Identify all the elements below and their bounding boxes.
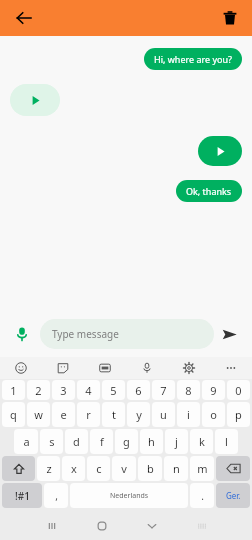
button[interactable]: h [140, 429, 163, 454]
button[interactable]: w [27, 402, 50, 427]
button[interactable]: s [40, 429, 63, 454]
staticText: s [49, 434, 55, 449]
button[interactable]: Record voice message [8, 320, 36, 348]
button[interactable]: 5 [102, 380, 125, 400]
staticText: o [210, 407, 217, 422]
staticText: l [225, 434, 228, 449]
button[interactable]: j [165, 429, 188, 454]
button[interactable]: Emoji [0, 357, 42, 379]
button[interactable]: 0 [227, 380, 250, 400]
staticText: 6 [135, 383, 142, 398]
staticText: !#1 [15, 489, 30, 503]
button[interactable]: Backspace [216, 456, 250, 481]
staticText: v [121, 461, 127, 476]
button[interactable]: r [77, 402, 100, 427]
staticText: f [100, 434, 104, 449]
button[interactable]: Type message [40, 319, 214, 349]
button[interactable]: Shift [2, 456, 35, 481]
staticText: w [34, 407, 43, 422]
staticText: n [173, 461, 180, 476]
staticText: r [86, 407, 91, 422]
staticText: , [55, 489, 58, 503]
staticText: 4 [85, 383, 92, 398]
button[interactable]: p [227, 402, 250, 427]
button[interactable]: Symbols [2, 483, 42, 508]
staticText: a [23, 434, 30, 449]
button[interactable]: More options [210, 357, 252, 379]
button[interactable]: n [164, 456, 188, 481]
staticText: p [235, 407, 242, 422]
staticText: m [197, 461, 208, 476]
button[interactable]: a [14, 429, 38, 454]
button[interactable]: l [215, 429, 238, 454]
button[interactable]: GIF [84, 357, 126, 379]
button[interactable]: i [177, 402, 200, 427]
button[interactable]: g [115, 429, 138, 454]
staticText: q [10, 407, 17, 422]
staticText: h [148, 434, 155, 449]
button[interactable]: Play voice message [10, 84, 60, 116]
staticText: 8 [185, 383, 192, 398]
button[interactable]: 2 [27, 380, 50, 400]
staticText: Hi, where are you? [154, 53, 232, 65]
button[interactable]: b [138, 456, 162, 481]
staticText: u [160, 407, 167, 422]
button[interactable]: 3 [52, 380, 75, 400]
button[interactable]: Send [214, 319, 244, 349]
button[interactable]: , [44, 483, 68, 508]
staticText: . [201, 489, 204, 503]
button[interactable]: Play voice message [198, 136, 242, 166]
button[interactable]: v [112, 456, 136, 481]
staticText: 9 [210, 383, 217, 398]
staticText: y [136, 407, 142, 422]
staticText: 0 [235, 383, 242, 398]
button[interactable]: Hi, where are you? [144, 48, 242, 70]
button[interactable]: 9 [202, 380, 225, 400]
button[interactable]: 7 [152, 380, 175, 400]
staticText: Ok, thanks [186, 185, 232, 197]
button[interactable]: o [202, 402, 225, 427]
button[interactable]: Settings [168, 357, 210, 379]
button[interactable]: Home [77, 512, 127, 540]
button[interactable]: Hide keyboard [127, 512, 177, 540]
button[interactable]: c [87, 456, 110, 481]
staticText: 7 [160, 383, 167, 398]
button[interactable]: u [152, 402, 175, 427]
button[interactable]: d [65, 429, 88, 454]
button[interactable]: y [127, 402, 150, 427]
button[interactable]: Ok, thanks [176, 180, 242, 202]
button[interactable]: Stickers [42, 357, 84, 379]
button[interactable]: Delete [220, 8, 240, 28]
button[interactable]: f [90, 429, 113, 454]
staticText: 1 [10, 383, 17, 398]
button[interactable]: q [2, 402, 25, 427]
staticText: i [187, 407, 190, 422]
staticText: b [147, 461, 154, 476]
staticText: 2 [35, 383, 42, 398]
button[interactable]: k [190, 429, 213, 454]
staticText: d [73, 434, 80, 449]
button[interactable]: 1 [2, 380, 25, 400]
button[interactable]: Back [12, 6, 36, 30]
button[interactable]: e [52, 402, 75, 427]
staticText: 5 [110, 383, 117, 398]
button[interactable]: 6 [127, 380, 150, 400]
button[interactable]: m [190, 456, 214, 481]
button[interactable]: 4 [77, 380, 100, 400]
staticText: t [112, 407, 116, 422]
button[interactable]: Recent apps [26, 512, 77, 540]
button[interactable]: x [62, 456, 85, 481]
staticText: z [46, 461, 52, 476]
button[interactable]: 8 [177, 380, 200, 400]
button[interactable]: Language German [216, 483, 250, 508]
button[interactable]: . [190, 483, 214, 508]
staticText: Ger. [226, 490, 241, 501]
button[interactable]: Nederlands [70, 483, 188, 508]
button[interactable]: Voice input [126, 357, 168, 379]
staticText: g [123, 434, 130, 449]
staticText: c [96, 461, 102, 476]
staticText: x [71, 461, 77, 476]
button[interactable]: z [37, 456, 60, 481]
button[interactable]: t [102, 402, 125, 427]
